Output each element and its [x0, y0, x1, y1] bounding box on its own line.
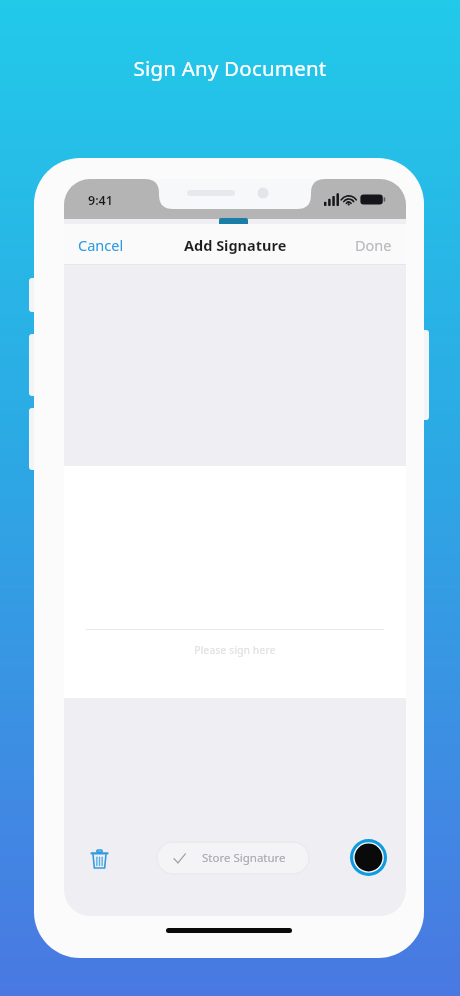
button[interactable]: Store Signature — [157, 842, 309, 874]
button[interactable]: Cancel — [64, 227, 138, 263]
button[interactable]: Done — [341, 227, 406, 263]
button[interactable]: Clear signature — [80, 840, 118, 878]
staticText: Add Signature — [184, 235, 287, 255]
staticText: Done — [355, 235, 392, 255]
staticText: Please sign here — [64, 643, 406, 657]
staticText: Sign Any Document — [0, 54, 460, 82]
staticText: 9:41 — [88, 192, 113, 209]
staticText: Store Signature — [202, 850, 286, 866]
button[interactable]: Ink colour: black — [349, 838, 388, 877]
staticText: Cancel — [78, 235, 124, 255]
